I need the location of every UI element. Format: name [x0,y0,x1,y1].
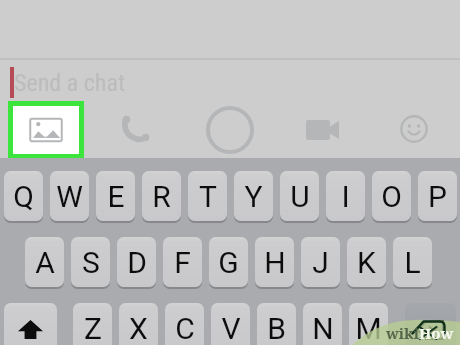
button[interactable]: Record [206,106,254,154]
button[interactable]: Call [112,107,160,151]
staticText: wiki [386,323,419,343]
staticText: V [221,311,241,345]
button[interactable]: Y [234,171,273,223]
staticText: Send a chat [14,69,126,97]
button[interactable]: E [96,171,135,223]
button[interactable]: Backspace [405,303,456,345]
staticText: N [312,311,334,345]
button[interactable]: L [393,237,432,289]
staticText: X [129,311,148,345]
button[interactable]: H [255,237,294,289]
button[interactable]: P [418,171,457,223]
staticText: R [152,179,171,214]
staticText: Z [84,311,102,345]
staticText: How [419,323,454,343]
staticText: Q [13,179,34,214]
button[interactable]: D [117,237,156,289]
button[interactable]: Video call [299,106,347,154]
button[interactable]: C [165,303,204,345]
staticText: E [107,179,125,214]
staticText: M [355,311,382,345]
staticText: W [56,179,83,214]
button[interactable]: S [71,237,110,289]
button[interactable]: B [257,303,296,345]
button[interactable]: W [50,171,89,223]
button[interactable]: F [163,237,202,289]
staticText: B [267,311,286,345]
button[interactable]: A [25,237,64,289]
staticText: I [341,179,350,214]
button[interactable]: J [301,237,340,289]
staticText: U [290,179,310,214]
button[interactable]: G [209,237,248,289]
button[interactable]: K [347,237,386,289]
button[interactable]: I [326,171,365,223]
staticText: P [428,179,447,214]
button[interactable]: Photo gallery [13,106,79,154]
button[interactable]: Shift [4,303,57,345]
staticText: G [218,245,239,280]
staticText: K [357,245,376,280]
button[interactable]: X [119,303,158,345]
button[interactable]: R [142,171,181,223]
staticText: J [312,245,329,280]
staticText: A [35,245,55,280]
button[interactable]: O [372,171,411,223]
staticText: C [175,311,195,345]
staticText: O [381,179,402,214]
button[interactable]: Z [73,303,112,345]
staticText: D [127,245,147,280]
button[interactable]: Send a chat [0,59,460,101]
button[interactable]: N [303,303,342,345]
staticText: L [404,245,421,280]
button[interactable]: M [349,303,388,345]
staticText: T [199,179,217,214]
staticText: H [264,245,286,280]
staticText: F [174,245,191,280]
button[interactable]: V [211,303,250,345]
button[interactable]: Q [4,171,43,223]
staticText: S [82,245,100,280]
staticText: Y [244,179,263,214]
button[interactable]: Stickers [390,105,438,153]
button[interactable]: T [188,171,227,223]
button[interactable]: U [280,171,319,223]
